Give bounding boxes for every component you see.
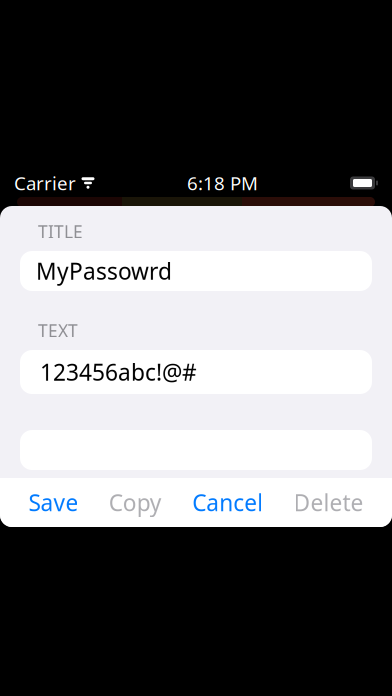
button[interactable]: Copy xyxy=(99,477,172,528)
staticText: 6:18 PM xyxy=(187,171,258,195)
button[interactable]: 123456abc!@# xyxy=(20,350,372,394)
staticText: Copy xyxy=(109,487,162,518)
staticText: Save xyxy=(28,487,78,518)
staticText: Cancel xyxy=(192,487,263,518)
staticText: Carrier xyxy=(14,171,76,195)
staticText: 123456abc!@# xyxy=(40,357,197,387)
button[interactable]: MyPassowrd xyxy=(20,251,372,291)
staticText: Delete xyxy=(294,487,364,518)
button[interactable]: Delete xyxy=(284,477,374,528)
staticText: MyPassowrd xyxy=(36,256,172,286)
staticText: TITLE xyxy=(38,220,83,243)
button[interactable]: Cancel xyxy=(182,477,273,528)
button[interactable]: Save xyxy=(18,477,88,528)
staticText: TEXT xyxy=(38,319,78,342)
